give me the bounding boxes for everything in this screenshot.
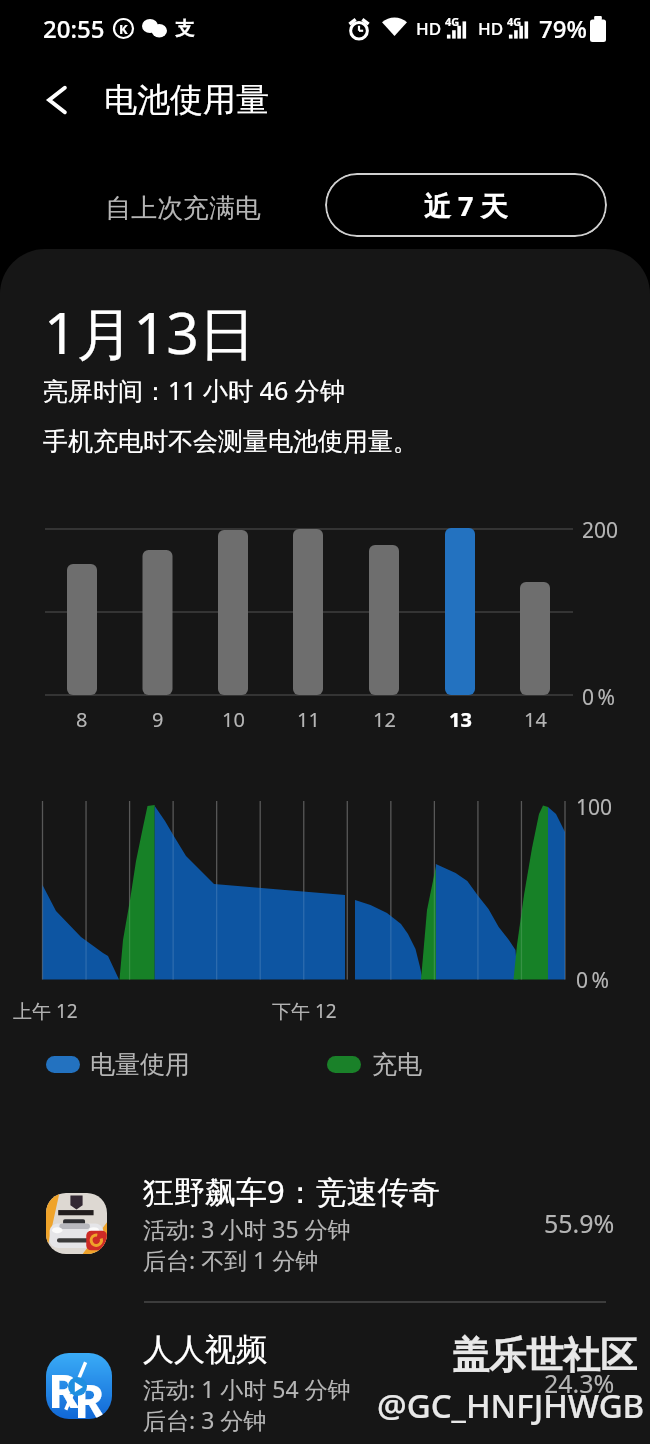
button[interactable]: 狂野飙车9：竞速传奇 (0, 1163, 650, 1313)
staticText: 14 (524, 706, 547, 733)
staticText: 后台: 不到 1 分钟 (143, 1244, 319, 1275)
staticText: 充电 (372, 1049, 422, 1080)
staticText: R (48, 1358, 79, 1419)
staticText: 79% (539, 12, 587, 45)
staticText: 10 (222, 706, 245, 733)
staticText: 近 7 天 (424, 187, 508, 224)
staticText: 后台: 3 分钟 (143, 1404, 267, 1435)
staticText: 盖乐世社区 (452, 1332, 637, 1379)
staticText: 活动: 3 小时 35 分钟 (143, 1213, 351, 1244)
staticText: 55.9% (544, 1206, 615, 1240)
staticText: 亮屏时间：11 小时 46 分钟 (43, 373, 345, 407)
staticText: 24.3% (544, 1366, 615, 1400)
button[interactable]: Back (29, 72, 85, 128)
staticText: 电池使用量 (104, 79, 269, 121)
staticText: K (119, 20, 128, 38)
staticText: HD (478, 17, 504, 40)
staticText: 100 (576, 793, 613, 822)
staticText: 9 (152, 706, 164, 733)
staticText: 上午 12 (13, 998, 78, 1024)
staticText: 0 % (576, 966, 609, 995)
staticText: 人人视频 (143, 1330, 267, 1369)
staticText: 0 % (582, 683, 615, 712)
staticText: 活动: 1 小时 54 分钟 (143, 1373, 351, 1404)
staticText: 20:55 (43, 12, 105, 45)
staticText: 电量使用 (90, 1049, 190, 1080)
staticText: 11 (297, 706, 320, 733)
staticText: 8 (76, 706, 88, 733)
staticText: 手机充电时不会测量电池使用量。 (43, 426, 418, 457)
staticText: 12 (373, 706, 396, 733)
staticText: 自上次充满电 (105, 192, 261, 225)
staticText: 下午 12 (272, 998, 337, 1024)
button[interactable]: R (0, 1323, 650, 1444)
staticText: 狂野飙车9：竞速传奇 (143, 1170, 440, 1212)
staticText: 4G (445, 14, 460, 29)
button[interactable]: 近 7 天 (325, 173, 607, 237)
staticText: 4G (507, 14, 522, 29)
staticText: 1月13日 (44, 293, 256, 371)
staticText: R (74, 1368, 105, 1419)
staticText: HD (416, 17, 442, 40)
staticText: 支 (175, 17, 194, 41)
staticText: @GC_HNFJHWGB (377, 1383, 645, 1428)
staticText: 13 (449, 706, 472, 733)
button[interactable]: 自上次充满电 (92, 175, 274, 241)
staticText: 200 (582, 516, 619, 545)
